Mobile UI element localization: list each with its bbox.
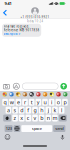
button[interactable]: a	[6, 107, 11, 114]
button[interactable]: p	[62, 99, 68, 106]
staticText: 123	[6, 126, 12, 131]
staticText: k	[53, 107, 56, 114]
button[interactable]: j	[45, 107, 51, 114]
staticText: z	[14, 114, 17, 122]
button[interactable]: space	[21, 125, 52, 132]
button[interactable]: n	[45, 115, 51, 121]
staticText: j	[48, 107, 49, 114]
staticText: send	[55, 126, 63, 131]
staticText: i	[51, 99, 52, 106]
staticText: space	[32, 126, 42, 131]
staticText: n	[47, 114, 50, 122]
button[interactable]: k	[52, 107, 58, 114]
button[interactable]: v	[32, 115, 38, 121]
button[interactable]: Apps	[13, 82, 20, 90]
button[interactable]: d	[19, 107, 24, 114]
button[interactable]: Emoji suggestion	[15, 92, 21, 97]
staticText: Today 10:24	[26, 19, 43, 23]
button[interactable]: Emoji suggestion	[42, 92, 48, 97]
staticText: Reference NTB 9017838	[4, 28, 40, 32]
button[interactable]: Emoji suggestion	[28, 92, 35, 97]
button[interactable]: r	[22, 99, 28, 106]
staticText: p	[63, 99, 66, 106]
button[interactable]: Delete	[59, 115, 67, 121]
button[interactable]: Emoji keyboard	[4, 134, 11, 140]
staticText: l	[61, 107, 62, 114]
button[interactable]: Next keyboard	[14, 125, 20, 132]
button[interactable]: u	[42, 99, 48, 106]
button[interactable]: Shift	[3, 115, 11, 121]
button[interactable]: Send	[60, 83, 67, 90]
button[interactable]: l	[59, 107, 64, 114]
staticText: d	[20, 107, 23, 114]
button[interactable]: w	[9, 99, 14, 106]
staticText: g	[33, 107, 36, 114]
button[interactable]: b	[39, 115, 44, 121]
staticText: h	[40, 107, 43, 114]
staticText: m	[52, 114, 57, 122]
staticText: e	[17, 99, 20, 106]
staticText: t	[31, 99, 33, 106]
button[interactable]: m	[52, 115, 58, 121]
button[interactable]: i	[49, 99, 54, 106]
button[interactable]: f	[25, 107, 31, 114]
button[interactable]: Emoji suggestion	[1, 92, 8, 97]
staticText: 9:41	[4, 1, 11, 6]
button[interactable]: send	[53, 125, 65, 132]
button[interactable]: t	[29, 99, 34, 106]
staticText: q	[4, 99, 7, 106]
button[interactable]: 123	[5, 125, 13, 132]
staticText: r	[24, 99, 26, 106]
button[interactable]: c	[25, 115, 31, 121]
staticText: +1 (555) 010-9921	[20, 15, 49, 19]
button[interactable]: x	[19, 115, 24, 121]
button[interactable]: h	[39, 107, 44, 114]
button[interactable]: Emoji suggestion	[48, 92, 55, 97]
button[interactable]: s	[12, 107, 18, 114]
staticText: Final fare received.	[4, 25, 30, 28]
button[interactable]: o	[55, 99, 61, 106]
button[interactable]: Emoji suggestion	[62, 92, 69, 97]
staticText: c	[27, 114, 30, 122]
button[interactable]: Emoji suggestion	[22, 92, 28, 97]
button[interactable]: q	[2, 99, 8, 106]
staticText: u	[43, 99, 46, 106]
button[interactable]: Emoji suggestion	[55, 92, 62, 97]
staticText: f	[27, 107, 29, 114]
staticText: a	[7, 107, 10, 114]
staticText: x	[20, 114, 23, 122]
button[interactable]: y	[35, 99, 41, 106]
button[interactable]: Dictation	[59, 134, 66, 140]
button[interactable]: Camera	[3, 82, 10, 90]
button[interactable]: g	[32, 107, 38, 114]
button[interactable]: Emoji suggestion	[35, 92, 42, 97]
staticText: o	[57, 99, 60, 106]
button[interactable]: +1 (555) 010-9921	[20, 7, 49, 19]
staticText: view.rcpt/a19	[4, 32, 21, 36]
button[interactable]: e	[16, 99, 21, 106]
button[interactable]: Back	[0, 8, 10, 18]
staticText: y	[37, 99, 40, 106]
button[interactable]: z	[12, 115, 18, 121]
staticText: w	[10, 99, 14, 106]
staticText: b	[40, 114, 43, 122]
staticText: v	[33, 114, 36, 122]
staticText: s	[14, 107, 17, 114]
button[interactable]: Emoji suggestion	[8, 92, 15, 97]
